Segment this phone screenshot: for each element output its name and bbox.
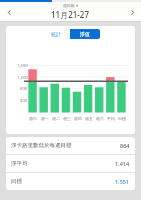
staticText: 週六 <box>96 116 104 121</box>
staticText: 400 <box>20 98 28 104</box>
staticText: 週五 <box>85 116 93 121</box>
staticText: 淨卡路里數低於每週目標 <box>11 142 72 149</box>
staticText: 週三 <box>63 116 71 121</box>
staticText: 1,551 <box>115 178 130 185</box>
staticText: 864 <box>120 142 130 149</box>
staticText: 週結帳 ▾ <box>63 3 79 8</box>
staticText: 統計 <box>51 31 61 37</box>
staticText: 目標 <box>11 178 22 185</box>
staticText: 週四 <box>74 116 82 121</box>
staticText: 週二 <box>52 116 60 121</box>
staticText: 淨值 <box>80 31 90 37</box>
button[interactable]: 淨平均 <box>6 155 135 172</box>
staticText: 週一 <box>41 116 49 121</box>
button[interactable]: 淨卡路里數低於每週目標 <box>6 137 135 154</box>
staticText: 週日 <box>29 116 37 121</box>
button[interactable]: Next week <box>123 3 141 21</box>
button[interactable]: Previous week <box>0 3 18 21</box>
staticText: 800 <box>20 86 28 92</box>
staticText: 1,200 <box>17 75 28 81</box>
staticText: 1,414 <box>115 160 130 167</box>
staticText: 淨平均 <box>11 160 28 167</box>
staticText: 1,600 <box>17 63 28 69</box>
staticText: 11月21-27 <box>51 9 90 20</box>
button[interactable]: 目標 <box>6 173 135 190</box>
staticText: 目標 <box>118 116 126 121</box>
staticText: 平均 <box>107 116 115 121</box>
button[interactable]: 淨值 <box>70 29 100 39</box>
button[interactable]: 統計 <box>41 29 70 39</box>
